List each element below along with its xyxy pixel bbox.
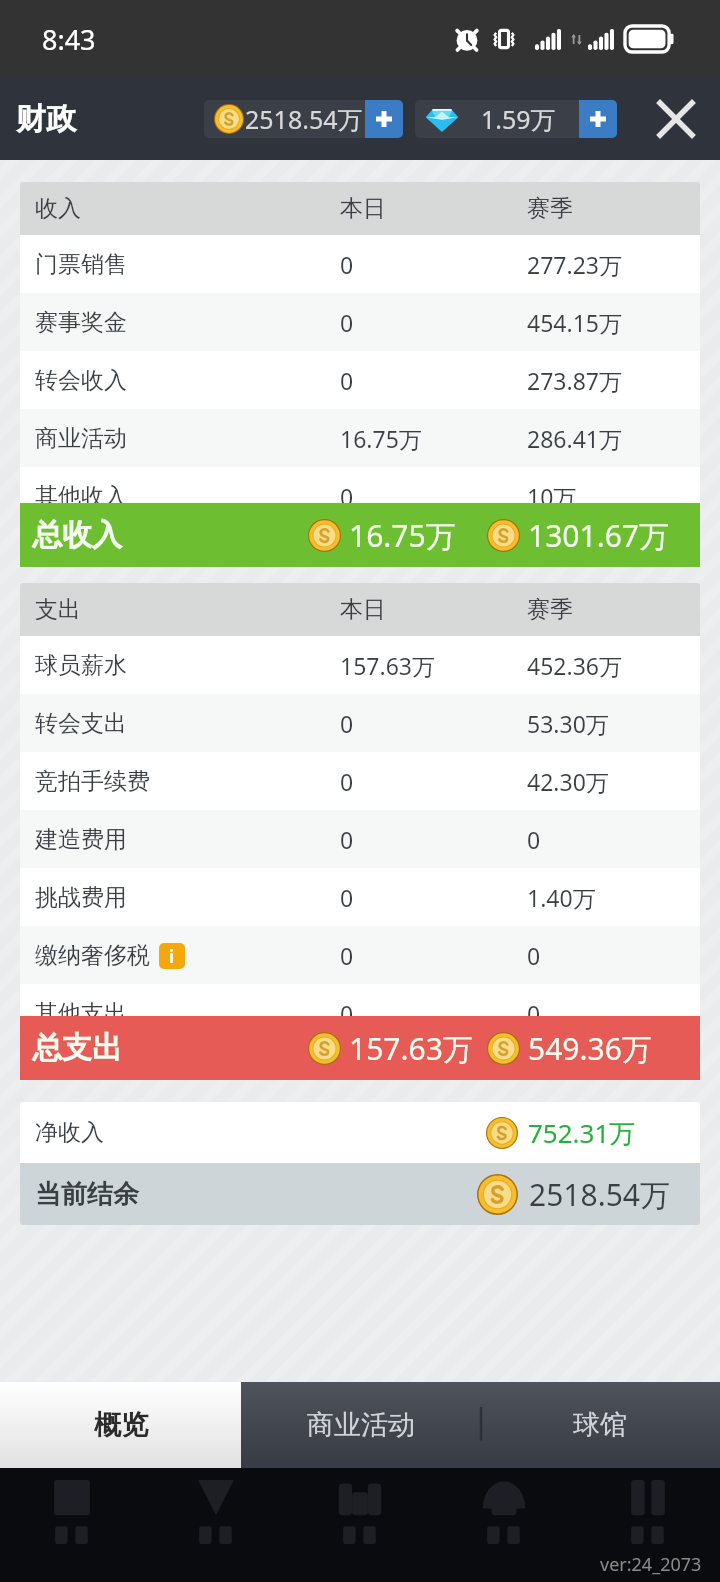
staticText: 16.75万 — [340, 423, 422, 454]
button[interactable]: Add gems — [579, 100, 617, 138]
staticText: 0 — [340, 365, 354, 396]
staticText: 挑战费用 — [35, 883, 127, 912]
button[interactable]: 净收入 — [20, 1102, 700, 1163]
staticText: 赛季 — [527, 194, 573, 223]
button[interactable]: 缴纳奢侈税 — [20, 926, 700, 984]
staticText: 53.30万 — [527, 708, 609, 739]
staticText: 752.31万 — [528, 1115, 636, 1151]
staticText: 总支出 — [32, 1029, 122, 1067]
button[interactable]: 竞拍手续费 — [20, 752, 700, 810]
button[interactable]: 球馆 — [480, 1382, 720, 1468]
staticText: 1301.67万 — [528, 515, 669, 556]
button[interactable]: 球员薪水 — [20, 636, 700, 694]
staticText: 0 — [340, 766, 354, 797]
staticText: 转会收入 — [35, 366, 127, 395]
staticText: 本日 — [340, 595, 386, 624]
button[interactable]: 其他支出 — [20, 984, 700, 1016]
staticText: 0 — [527, 940, 541, 971]
staticText: 16.75万 — [349, 515, 456, 556]
staticText: 其他支出 — [35, 999, 127, 1016]
staticText: 454.15万 — [527, 307, 622, 338]
staticText: 2518.54万 — [245, 102, 363, 136]
staticText: 0 — [340, 998, 354, 1016]
staticText: 549.36万 — [528, 1028, 652, 1069]
staticText: i — [169, 945, 175, 968]
button[interactable]: Club — [432, 1468, 576, 1560]
button[interactable]: 门票销售 — [20, 235, 700, 293]
button[interactable]: 建造费用 — [20, 810, 700, 868]
button[interactable]: 挑战费用 — [20, 868, 700, 926]
staticText: 0 — [527, 824, 541, 855]
staticText: 转会支出 — [35, 709, 127, 738]
staticText: 8:43 — [42, 21, 96, 58]
staticText: 452.36万 — [527, 650, 622, 681]
button[interactable]: Close — [650, 93, 702, 145]
staticText: 286.41万 — [527, 423, 622, 454]
staticText: ver:24_2073 — [600, 1552, 702, 1577]
staticText: 竞拍手续费 — [35, 767, 150, 796]
staticText: 0 — [340, 940, 354, 971]
staticText: 其他收入 — [35, 482, 127, 503]
staticText: 净收入 — [35, 1118, 104, 1147]
staticText: 10万 — [527, 481, 577, 503]
staticText: 球馆 — [573, 1408, 627, 1442]
staticText: 当前结余 — [35, 1178, 139, 1211]
staticText: 157.63万 — [349, 1028, 473, 1069]
button[interactable]: 转会支出 — [20, 694, 700, 752]
staticText: 157.63万 — [340, 650, 435, 681]
staticText: 建造费用 — [35, 825, 127, 854]
staticText: 273.87万 — [527, 365, 622, 396]
staticText: 42.30万 — [527, 766, 609, 797]
button[interactable]: 当前结余 — [20, 1163, 700, 1225]
staticText: 2518.54万 — [529, 1174, 670, 1215]
staticText: 支出 — [35, 595, 81, 624]
button[interactable]: 转会收入 — [20, 351, 700, 409]
button[interactable]: 总支出 — [20, 1016, 700, 1080]
button[interactable]: Add coins — [365, 100, 403, 138]
button[interactable]: 商业活动 — [241, 1382, 480, 1468]
staticText: 收入 — [35, 194, 81, 223]
button[interactable]: 赛事奖金 — [20, 293, 700, 351]
button[interactable]: 商业活动 — [20, 409, 700, 467]
staticText: 1.59万 — [481, 102, 556, 136]
staticText: 概览 — [94, 1408, 148, 1442]
staticText: 赛季 — [527, 595, 573, 624]
button[interactable]: 概览 — [0, 1382, 241, 1468]
staticText: 0 — [340, 882, 354, 913]
staticText: 财政 — [16, 100, 76, 138]
staticText: 球员薪水 — [35, 651, 127, 680]
button[interactable]: Squad — [0, 1468, 144, 1560]
button[interactable]: More — [576, 1468, 720, 1560]
staticText: 缴纳奢侈税 — [35, 941, 150, 970]
staticText: 277.23万 — [527, 249, 622, 280]
button[interactable]: 其他收入 — [20, 467, 700, 503]
staticText: 0 — [340, 481, 354, 503]
staticText: 0 — [527, 998, 541, 1016]
staticText: 0 — [340, 307, 354, 338]
staticText: 门票销售 — [35, 250, 127, 279]
button[interactable]: 2518.54万 — [204, 100, 403, 138]
staticText: 0 — [340, 708, 354, 739]
staticText: 总收入 — [32, 516, 122, 554]
button[interactable]: Training — [144, 1468, 288, 1560]
button[interactable]: 总收入 — [20, 503, 700, 567]
staticText: 赛事奖金 — [35, 308, 127, 337]
staticText: 0 — [340, 249, 354, 280]
staticText: 商业活动 — [307, 1408, 415, 1442]
staticText: 1.40万 — [527, 882, 596, 913]
staticText: 商业活动 — [35, 424, 127, 453]
staticText: 0 — [340, 824, 354, 855]
staticText: 本日 — [340, 194, 386, 223]
button[interactable]: 1.59万 — [415, 100, 617, 138]
button[interactable]: Matches — [288, 1468, 432, 1560]
